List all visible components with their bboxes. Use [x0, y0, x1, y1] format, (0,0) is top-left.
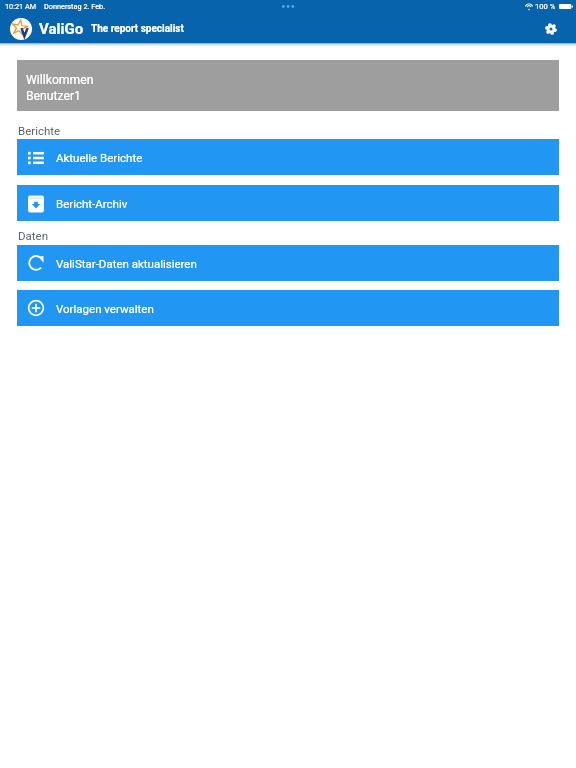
- button[interactable]: Aktuelle Berichte: [17, 139, 559, 175]
- staticText: Aktuelle Berichte: [56, 151, 143, 164]
- staticText: ValiStar-Daten aktualisieren: [56, 257, 197, 270]
- staticText: Vorlagen verwalten: [56, 302, 154, 315]
- button[interactable]: Settings: [536, 14, 565, 43]
- button[interactable]: Bericht-Archiv: [17, 185, 559, 221]
- button[interactable]: Willkommen: [17, 60, 559, 111]
- staticText: Bericht-Archiv: [56, 197, 128, 210]
- button[interactable]: ValiStar-Daten aktualisieren: [17, 245, 559, 281]
- staticText: 10:21 AM: [5, 2, 37, 11]
- staticText: Willkommen: [26, 73, 94, 87]
- staticText: Berichte: [18, 124, 61, 137]
- button[interactable]: Vorlagen verwalten: [17, 290, 559, 326]
- staticText: Donnerstag 2. Feb.: [44, 2, 106, 11]
- staticText: The report specialist: [91, 23, 184, 35]
- staticText: ValiGo: [39, 20, 84, 38]
- staticText: Daten: [18, 229, 49, 242]
- staticText: Benutzer1: [26, 89, 81, 103]
- staticText: 100 %: [535, 2, 556, 11]
